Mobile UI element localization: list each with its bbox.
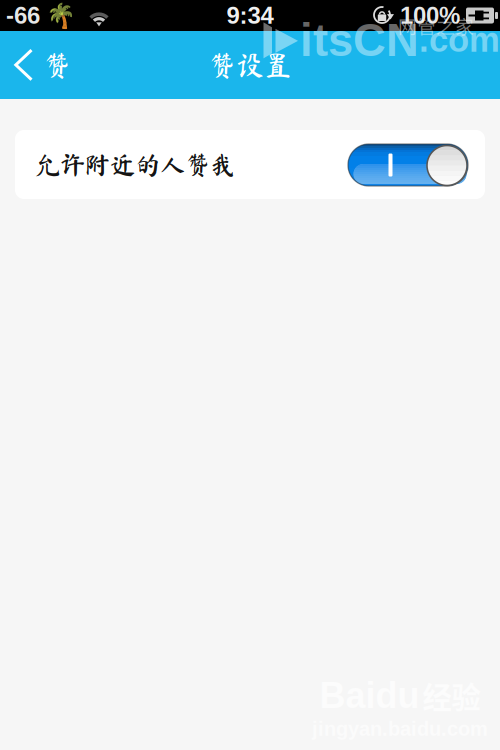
button[interactable]: 允许附近的人赞我 xyxy=(15,130,485,199)
staticText: .com xyxy=(419,20,500,59)
staticText: itsCN xyxy=(300,15,419,66)
staticText: 赞设置 xyxy=(208,51,292,79)
staticText: 9:34 xyxy=(226,2,273,29)
staticText: 网管之家 xyxy=(398,12,474,39)
staticText: 🌴 xyxy=(46,1,76,29)
staticText: -66 xyxy=(6,2,40,29)
staticText: 允许附近的人赞我 xyxy=(35,152,235,177)
staticText: 100% xyxy=(400,2,460,29)
button[interactable]: 赞 xyxy=(0,31,83,99)
staticText: 赞 xyxy=(43,51,71,79)
